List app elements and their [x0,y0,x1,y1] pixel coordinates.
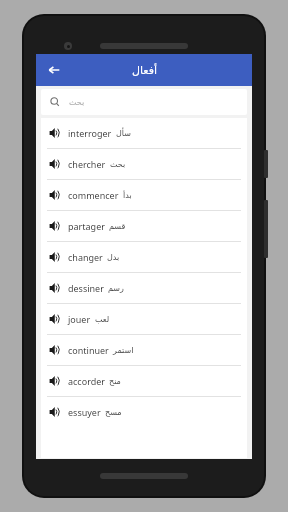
other: Play pronunciation [48,281,62,295]
button[interactable]: Play pronunciation [41,273,247,303]
staticText: partager [68,220,105,232]
button[interactable]: Play pronunciation [41,304,247,334]
staticText: dessiner [68,282,104,294]
staticText: لعب [95,315,110,324]
button[interactable]: Play pronunciation [41,242,247,272]
staticText: مسح [105,408,122,417]
staticText: commencer [68,189,119,201]
other: Play pronunciation [48,157,62,171]
staticText: بحث [110,160,126,169]
other: Play pronunciation [48,312,62,326]
button[interactable]: Play pronunciation [41,366,247,396]
staticText: أفعال [132,64,157,77]
staticText: بحث [69,98,85,107]
other: Play pronunciation [48,405,62,419]
other: Play pronunciation [48,250,62,264]
staticText: رسم [108,284,124,293]
staticText: continuer [68,344,109,356]
button[interactable]: Play pronunciation [41,335,247,365]
staticText: changer [68,251,103,263]
other: Play pronunciation [48,374,62,388]
button[interactable]: Play pronunciation [41,118,247,148]
staticText: jouer [68,313,91,325]
staticText: سأل [116,129,131,138]
staticText: accorder [68,375,105,387]
button[interactable]: Play pronunciation [41,180,247,210]
other: Play pronunciation [48,126,62,140]
other: Play pronunciation [48,188,62,202]
staticText: interroger [68,127,112,139]
staticText: بدل [107,253,120,262]
staticText: chercher [68,158,106,170]
staticText: بدأ [123,191,132,200]
other: Play pronunciation [48,343,62,357]
staticText: استمر [113,346,134,355]
button[interactable]: Play pronunciation [41,211,247,241]
button[interactable]: Back [40,56,68,84]
staticText: قسم [109,222,126,231]
staticText: منح [109,377,121,386]
button[interactable]: بحث [41,89,247,115]
other: Play pronunciation [48,219,62,233]
staticText: essuyer [68,406,101,418]
button[interactable]: Play pronunciation [41,397,247,427]
button[interactable]: Play pronunciation [41,149,247,179]
